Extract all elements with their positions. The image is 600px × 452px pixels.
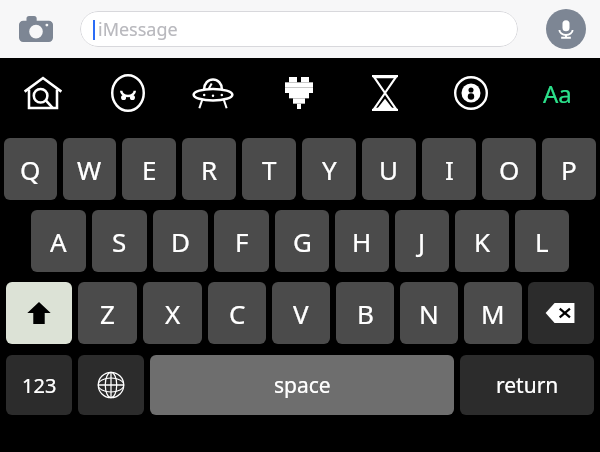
- staticText: L: [535, 224, 549, 259]
- button[interactable]: S: [92, 210, 147, 272]
- button[interactable]: Camera: [14, 7, 58, 51]
- staticText: A: [50, 224, 67, 259]
- staticText: W: [77, 152, 102, 187]
- button[interactable]: Q: [4, 138, 57, 200]
- button[interactable]: iMessage: [80, 11, 518, 47]
- button[interactable]: Hourglass: [342, 58, 428, 128]
- button[interactable]: I: [422, 138, 476, 200]
- staticText: Z: [100, 296, 115, 331]
- button[interactable]: Y: [302, 138, 356, 200]
- button[interactable]: Backspace: [528, 282, 594, 344]
- button[interactable]: J: [395, 210, 449, 272]
- button[interactable]: 123: [6, 355, 72, 415]
- button[interactable]: C: [208, 282, 266, 344]
- button[interactable]: Record audio: [544, 7, 588, 51]
- button[interactable]: App Store: [0, 58, 85, 128]
- staticText: X: [165, 296, 181, 331]
- button[interactable]: return: [460, 355, 594, 415]
- button[interactable]: A: [31, 210, 86, 272]
- button[interactable]: V: [272, 282, 330, 344]
- button[interactable]: F: [214, 210, 269, 272]
- button[interactable]: Z: [78, 282, 137, 344]
- staticText: K: [474, 224, 491, 259]
- button[interactable]: M: [464, 282, 522, 344]
- staticText: D: [171, 224, 190, 259]
- button[interactable]: O: [482, 138, 536, 200]
- staticText: B: [357, 296, 374, 331]
- button[interactable]: Eight ball: [428, 58, 514, 128]
- staticText: I: [445, 152, 454, 187]
- staticText: N: [419, 296, 439, 331]
- staticText: J: [418, 224, 426, 259]
- button[interactable]: D: [153, 210, 208, 272]
- button[interactable]: T: [242, 138, 296, 200]
- button[interactable]: L: [515, 210, 569, 272]
- button[interactable]: space: [150, 355, 454, 415]
- button[interactable]: U: [362, 138, 416, 200]
- button[interactable]: Shift: [6, 282, 72, 344]
- button[interactable]: UFO sticker: [170, 58, 256, 128]
- staticText: Aa: [543, 77, 572, 110]
- button[interactable]: Smiley: [85, 58, 170, 128]
- button[interactable]: Switch keyboard: [78, 355, 144, 415]
- staticText: 123: [22, 372, 57, 399]
- staticText: return: [496, 371, 559, 400]
- staticText: P: [561, 152, 577, 187]
- button[interactable]: P: [542, 138, 596, 200]
- staticText: Y: [322, 152, 337, 187]
- button[interactable]: G: [275, 210, 329, 272]
- button[interactable]: R: [182, 138, 236, 200]
- button[interactable]: W: [63, 138, 116, 200]
- staticText: Q: [20, 152, 41, 187]
- staticText: T: [262, 152, 277, 187]
- button[interactable]: K: [455, 210, 509, 272]
- staticText: R: [201, 152, 218, 187]
- button[interactable]: Pixel heart: [256, 58, 342, 128]
- staticText: space: [274, 371, 331, 400]
- staticText: H: [352, 224, 372, 259]
- button[interactable]: B: [336, 282, 394, 344]
- staticText: V: [293, 296, 309, 331]
- staticText: M: [481, 296, 505, 331]
- button[interactable]: X: [143, 282, 202, 344]
- staticText: S: [112, 224, 127, 259]
- staticText: C: [229, 296, 246, 331]
- staticText: O: [499, 152, 520, 187]
- button[interactable]: Text effects: [514, 58, 600, 128]
- staticText: iMessage: [98, 17, 178, 42]
- staticText: F: [235, 224, 249, 259]
- staticText: G: [293, 224, 312, 259]
- staticText: U: [379, 152, 399, 187]
- button[interactable]: N: [400, 282, 458, 344]
- staticText: E: [142, 152, 157, 187]
- button[interactable]: H: [335, 210, 389, 272]
- button[interactable]: E: [122, 138, 176, 200]
